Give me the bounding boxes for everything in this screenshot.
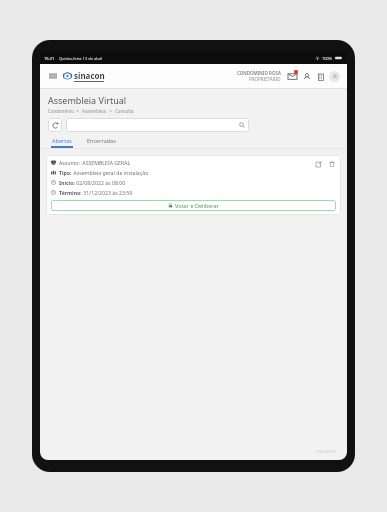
staticText: ASSEMBLEIA GERAL: [81, 159, 131, 166]
staticText: Quinta-feira 13 de abril: [59, 56, 103, 61]
button[interactable]: sinacon: [63, 70, 105, 82]
staticText: Abertas: [52, 137, 72, 144]
staticText: Assembleia Virtual: [48, 94, 127, 106]
staticText: >: [107, 108, 115, 114]
button[interactable]: Conta: [329, 71, 340, 82]
button[interactable]: Abertas: [48, 137, 76, 148]
staticText: >: [74, 108, 82, 114]
staticText: Assembleia: [82, 108, 107, 114]
button[interactable]: Atualizar: [48, 118, 62, 132]
button[interactable]: Encerradas: [84, 137, 119, 148]
button[interactable]: Excluir: [327, 159, 336, 168]
staticText: Início:: [59, 179, 75, 186]
staticText: Término:: [59, 189, 82, 196]
button[interactable]: Assunto:: [46, 155, 341, 215]
staticText: CONDOMINIO ROSA: [237, 70, 281, 76]
button[interactable]: Condomínio: [315, 71, 326, 82]
button[interactable]: Mensagens: [286, 70, 298, 82]
staticText: Consulta: [115, 108, 134, 114]
staticText: 31/12/2023 às 23:59: [82, 189, 133, 196]
staticText: Assembleia geral de instalação: [72, 169, 149, 176]
staticText: 100%: [322, 56, 333, 61]
staticText: CNDO0001: [316, 449, 337, 454]
staticText: sinacon: [74, 70, 105, 81]
button[interactable]: Menu: [47, 70, 59, 82]
staticText: Condomínio: [48, 108, 74, 114]
other: Pesquisar: [239, 122, 245, 128]
staticText: Votar e Deliberar: [175, 202, 219, 209]
button[interactable]: Pesquisar: [66, 118, 249, 132]
staticText: Assunto:: [59, 159, 81, 166]
staticText: 15:21: [44, 56, 55, 61]
staticText: PROPRIETÁRIO: [249, 76, 281, 82]
staticText: Tipo:: [59, 169, 72, 176]
staticText: Encerradas: [87, 137, 116, 144]
staticText: 02/08/2022 às 08:00: [75, 179, 126, 186]
button[interactable]: Perfil: [301, 71, 312, 82]
button[interactable]: Editar: [314, 159, 323, 168]
button[interactable]: Votar e Deliberar: [51, 200, 336, 211]
